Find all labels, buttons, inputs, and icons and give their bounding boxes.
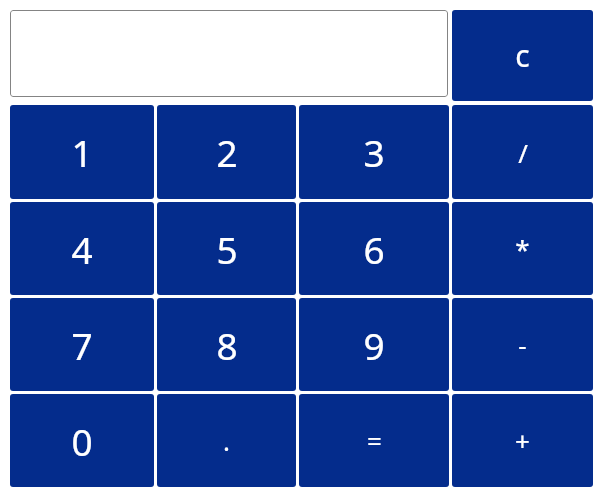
button[interactable]: Two	[157, 105, 296, 199]
button[interactable]: Clear	[452, 10, 593, 101]
staticText: 4	[71, 224, 93, 274]
button[interactable]: Decimal point	[157, 394, 296, 487]
button[interactable]: Subtract	[452, 298, 593, 391]
staticText: *	[515, 231, 530, 266]
button[interactable]: Divide	[452, 105, 593, 199]
button[interactable]: Add	[452, 394, 593, 487]
staticText: 2	[216, 127, 238, 177]
button[interactable]: Equals	[299, 394, 449, 487]
staticText: 8	[216, 320, 238, 370]
staticText: -	[518, 327, 527, 362]
button[interactable]: Five	[157, 202, 296, 295]
button[interactable]: Three	[299, 105, 449, 199]
staticText: .	[223, 423, 230, 458]
staticText: 7	[71, 320, 93, 370]
button[interactable]: Multiply	[452, 202, 593, 295]
staticText: /	[518, 135, 528, 170]
button[interactable]: Seven	[10, 298, 154, 391]
staticText: 1	[71, 127, 93, 177]
staticText: c	[515, 35, 530, 76]
button[interactable]: Zero	[10, 394, 154, 487]
staticText: 6	[363, 224, 385, 274]
staticText: 5	[216, 224, 238, 274]
staticText: 9	[363, 320, 385, 370]
button[interactable]: Six	[299, 202, 449, 295]
staticText: =	[367, 423, 382, 458]
button[interactable]: Eight	[157, 298, 296, 391]
staticText: +	[515, 423, 530, 458]
button[interactable]: One	[10, 105, 154, 199]
button[interactable]: Nine	[299, 298, 449, 391]
button[interactable]: Calculation display	[10, 10, 448, 97]
button[interactable]: Four	[10, 202, 154, 295]
staticText: 3	[363, 127, 385, 177]
staticText: 0	[71, 416, 93, 466]
